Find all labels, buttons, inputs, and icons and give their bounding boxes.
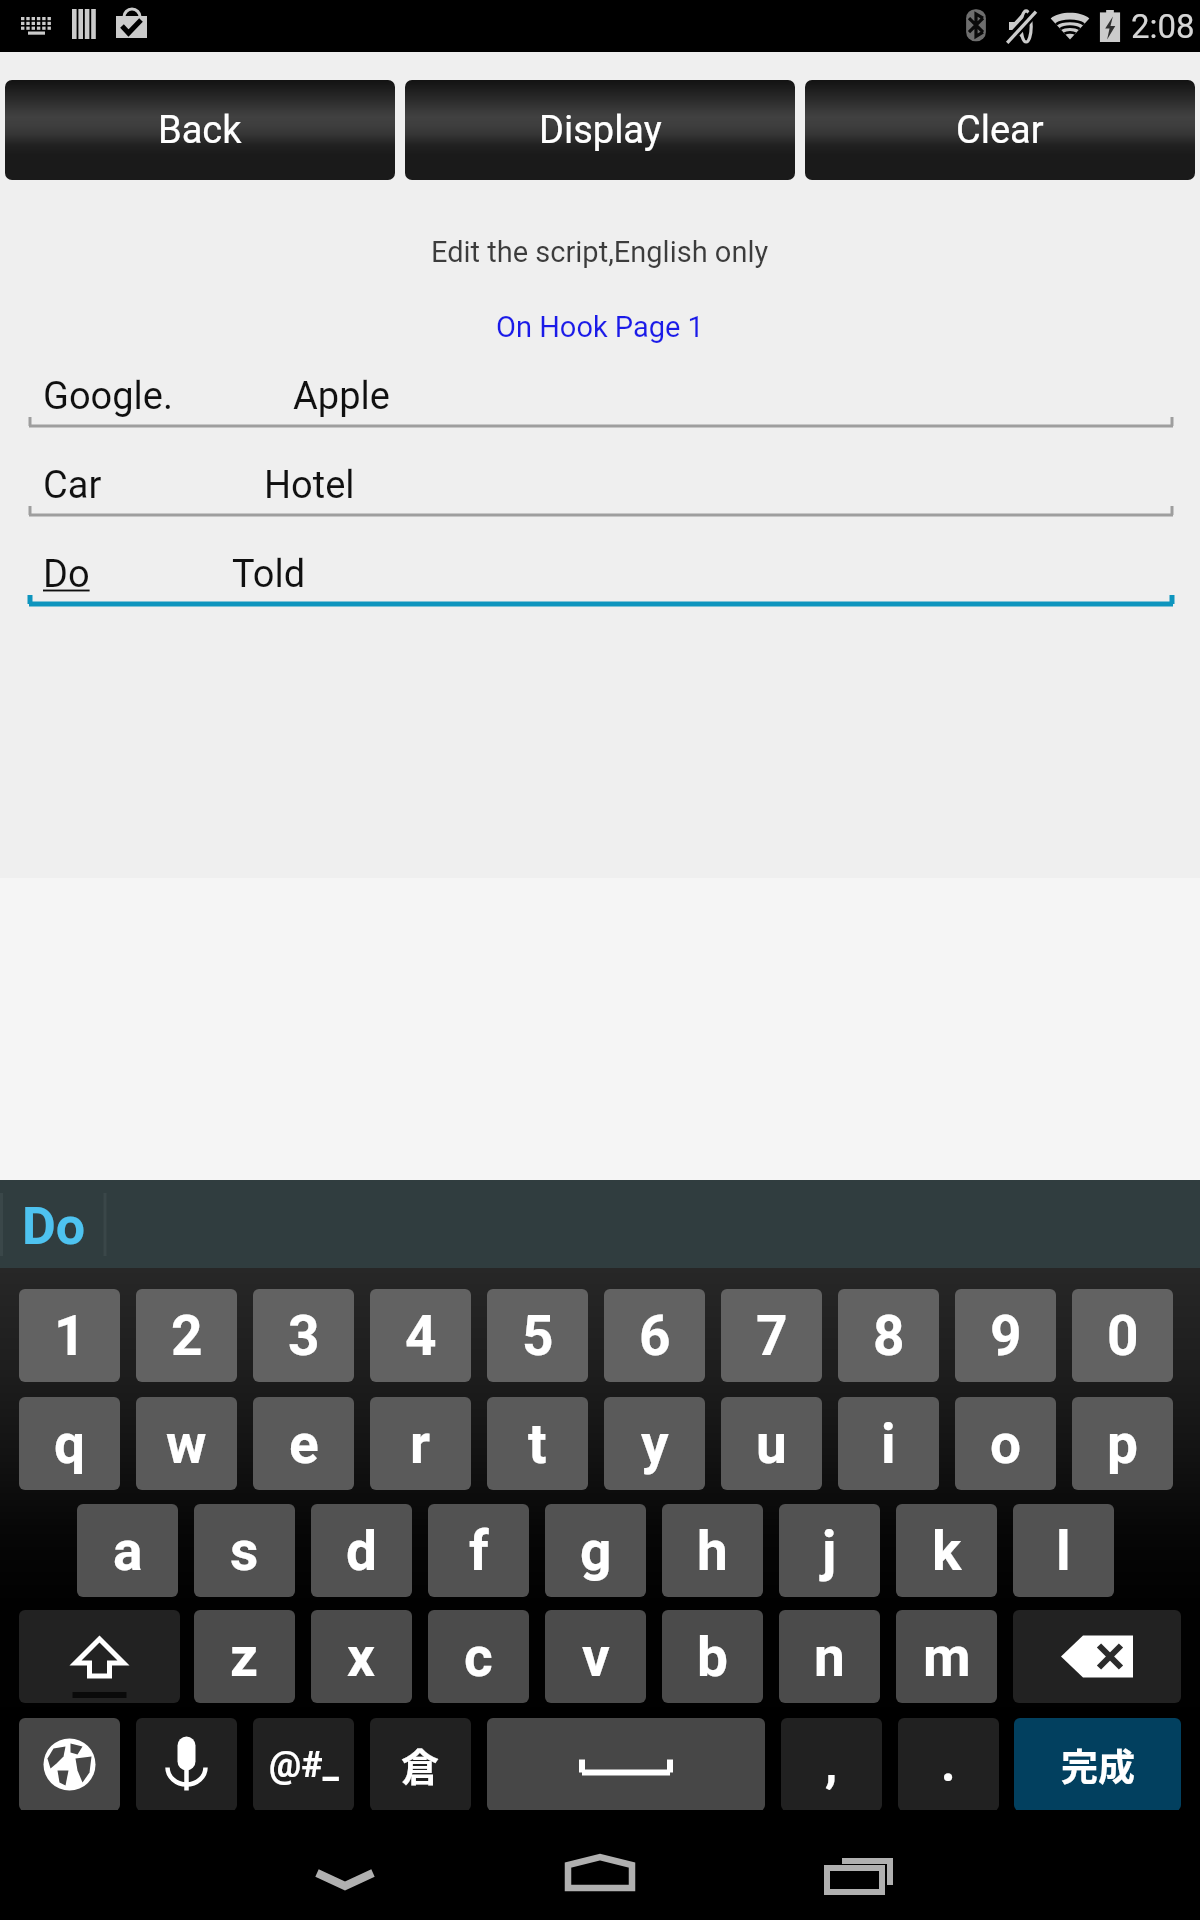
- staticText: n: [814, 1625, 845, 1689]
- button[interactable]: 2: [136, 1289, 237, 1382]
- button[interactable]: g: [545, 1504, 646, 1597]
- staticText: Clear: [956, 108, 1044, 153]
- button[interactable]: 7: [721, 1289, 822, 1382]
- button[interactable]: Clear: [805, 80, 1195, 180]
- button[interactable]: w: [136, 1397, 237, 1490]
- button[interactable]: 0: [1072, 1289, 1173, 1382]
- staticText: Car: [43, 463, 102, 508]
- button[interactable]: Back: [5, 80, 395, 180]
- button[interactable]: 5: [487, 1289, 588, 1382]
- staticText: a: [113, 1519, 143, 1583]
- button[interactable]: q: [19, 1397, 120, 1490]
- staticText: Do: [43, 552, 90, 597]
- staticText: s: [230, 1519, 259, 1583]
- button[interactable]: [19, 1718, 120, 1811]
- staticText: r: [410, 1412, 431, 1476]
- staticText: l: [1056, 1519, 1071, 1583]
- staticText: i: [881, 1412, 896, 1476]
- staticText: v: [582, 1625, 610, 1689]
- staticText: Google.: [43, 374, 173, 419]
- button[interactable]: o: [955, 1397, 1056, 1490]
- staticText: h: [697, 1519, 728, 1583]
- staticText: m: [923, 1625, 971, 1689]
- button[interactable]: @#_: [253, 1718, 354, 1811]
- button[interactable]: Recent apps: [795, 1810, 925, 1920]
- button[interactable]: [19, 1610, 180, 1703]
- staticText: 8: [873, 1304, 905, 1368]
- button[interactable]: [2, 1180, 105, 1268]
- staticText: q: [54, 1412, 86, 1476]
- button[interactable]: 9: [955, 1289, 1056, 1382]
- button[interactable]: 6: [604, 1289, 705, 1382]
- button[interactable]: v: [545, 1610, 646, 1703]
- staticText: Apple: [293, 374, 390, 419]
- button[interactable]: Display: [405, 80, 795, 180]
- button[interactable]: h: [662, 1504, 763, 1597]
- button[interactable]: 1: [19, 1289, 120, 1382]
- staticText: o: [990, 1412, 1022, 1476]
- staticText: y: [641, 1412, 669, 1476]
- button[interactable]: r: [370, 1397, 471, 1490]
- staticText: z: [230, 1625, 259, 1689]
- button[interactable]: x: [311, 1610, 412, 1703]
- button[interactable]: u: [721, 1397, 822, 1490]
- button[interactable]: c: [428, 1610, 529, 1703]
- button[interactable]: 8: [838, 1289, 939, 1382]
- staticText: 倉: [401, 1737, 440, 1792]
- staticText: Edit the script,English only: [431, 235, 769, 269]
- staticText: p: [1107, 1412, 1138, 1476]
- staticText: Do: [22, 1196, 86, 1257]
- staticText: 9: [990, 1304, 1022, 1368]
- button[interactable]: [487, 1718, 765, 1811]
- staticText: @#_: [269, 1744, 339, 1786]
- button[interactable]: b: [662, 1610, 763, 1703]
- button[interactable]: [0, 532, 1200, 618]
- button[interactable]: y: [604, 1397, 705, 1490]
- button[interactable]: 完成: [1014, 1718, 1181, 1811]
- button[interactable]: [1013, 1610, 1181, 1703]
- staticText: 2: [171, 1304, 203, 1368]
- staticText: t: [528, 1412, 547, 1476]
- staticText: Back: [158, 108, 242, 153]
- button[interactable]: Home: [535, 1810, 665, 1920]
- button[interactable]: 4: [370, 1289, 471, 1382]
- button[interactable]: f: [428, 1504, 529, 1597]
- staticText: w: [166, 1412, 207, 1476]
- button[interactable]: j: [779, 1504, 880, 1597]
- staticText: e: [289, 1412, 319, 1476]
- button[interactable]: 倉: [370, 1718, 471, 1811]
- staticText: 5: [522, 1304, 554, 1368]
- button[interactable]: [0, 354, 1200, 440]
- button[interactable]: k: [896, 1504, 997, 1597]
- button[interactable]: p: [1072, 1397, 1173, 1490]
- button[interactable]: i: [838, 1397, 939, 1490]
- button[interactable]: 3: [253, 1289, 354, 1382]
- button[interactable]: d: [311, 1504, 412, 1597]
- staticText: 3: [288, 1304, 320, 1368]
- staticText: f: [469, 1519, 489, 1583]
- staticText: c: [464, 1625, 493, 1689]
- button[interactable]: s: [194, 1504, 295, 1597]
- button[interactable]: m: [896, 1610, 997, 1703]
- button[interactable]: [0, 443, 1200, 529]
- button[interactable]: a: [77, 1504, 178, 1597]
- staticText: 4: [405, 1304, 437, 1368]
- button[interactable]: z: [194, 1610, 295, 1703]
- button[interactable]: n: [779, 1610, 880, 1703]
- staticText: 0: [1107, 1304, 1139, 1368]
- button[interactable]: [136, 1718, 237, 1811]
- staticText: .: [941, 1735, 956, 1794]
- button[interactable]: e: [253, 1397, 354, 1490]
- button[interactable]: Hide keyboard: [280, 1810, 410, 1920]
- staticText: ,: [825, 1735, 838, 1794]
- staticText: g: [580, 1519, 612, 1583]
- button[interactable]: .: [898, 1718, 999, 1811]
- button[interactable]: t: [487, 1397, 588, 1490]
- staticText: Told: [232, 552, 306, 597]
- button[interactable]: ,: [781, 1718, 882, 1811]
- staticText: Display: [539, 108, 662, 153]
- staticText: k: [932, 1519, 962, 1583]
- staticText: 完成: [1061, 1738, 1135, 1792]
- button[interactable]: l: [1013, 1504, 1114, 1597]
- staticText: 1: [54, 1304, 86, 1368]
